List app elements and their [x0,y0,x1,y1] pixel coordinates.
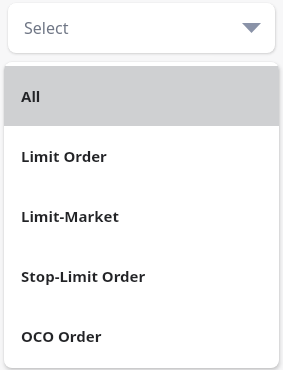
staticText: All [21,86,41,106]
staticText: OCO Order [21,326,102,346]
staticText: Limit-Market [21,206,119,226]
staticText: Stop-Limit Order [21,266,146,286]
staticText: Limit Order [21,146,107,166]
button[interactable]: Stop-Limit Order [4,246,279,306]
staticText: Select [24,17,69,39]
button[interactable]: All [4,66,279,126]
button[interactable]: Open dropdown [240,17,262,39]
button[interactable]: OCO Order [4,306,279,366]
button[interactable]: Select [8,3,275,53]
button[interactable]: Limit Order [4,126,279,186]
button[interactable]: Limit-Market [4,186,279,246]
